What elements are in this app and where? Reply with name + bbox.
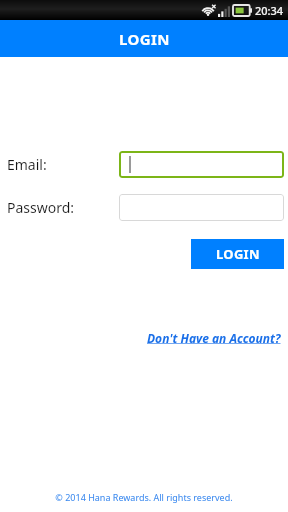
staticText: LOGIN	[119, 29, 170, 49]
button[interactable]: LOGIN	[191, 239, 284, 269]
other: Battery	[233, 5, 252, 16]
staticText: © 2014 Hana Rewards. All rights reserved…	[55, 491, 233, 503]
other: Wi-Fi	[201, 4, 217, 18]
button[interactable]: Email:	[119, 151, 284, 178]
button[interactable]: Password:	[119, 194, 284, 221]
staticText: LOGIN	[216, 245, 260, 263]
staticText: Email:	[7, 155, 47, 174]
staticText: Password:	[7, 198, 75, 217]
staticText: 20:34	[255, 3, 284, 18]
staticText: Don't Have an Account?	[147, 330, 281, 346]
button[interactable]: Don't Have an Account?	[147, 330, 281, 346]
other: Signal strength	[218, 5, 230, 17]
